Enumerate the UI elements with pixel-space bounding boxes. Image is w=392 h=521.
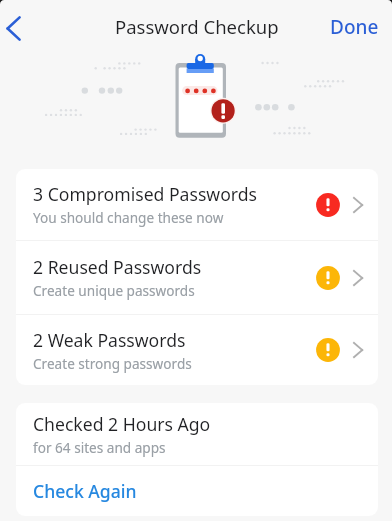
staticText: Password Checkup	[115, 14, 279, 39]
staticText: Create strong passwords	[33, 354, 192, 373]
button[interactable]: Check Again	[16, 466, 378, 516]
button[interactable]: Done	[318, 6, 392, 48]
staticText: for 64 sites and apps	[33, 438, 166, 457]
staticText: You should change these now	[33, 208, 224, 227]
staticText: Create unique passwords	[33, 281, 195, 300]
staticText: Checked 2 Hours Ago	[33, 412, 211, 436]
button[interactable]: Checked 2 Hours Ago	[16, 403, 378, 465]
staticText: 2 Reused Passwords	[33, 255, 202, 279]
staticText: Done	[330, 14, 379, 40]
button[interactable]: 2 Weak Passwords	[16, 315, 378, 385]
staticText: 3 Compromised Passwords	[33, 182, 257, 206]
staticText: Check Again	[33, 479, 137, 503]
button[interactable]: 2 Reused Passwords	[16, 241, 378, 314]
button[interactable]: 3 Compromised Passwords	[16, 169, 378, 240]
staticText: 2 Weak Passwords	[33, 328, 186, 352]
button[interactable]: Back	[0, 5, 44, 49]
